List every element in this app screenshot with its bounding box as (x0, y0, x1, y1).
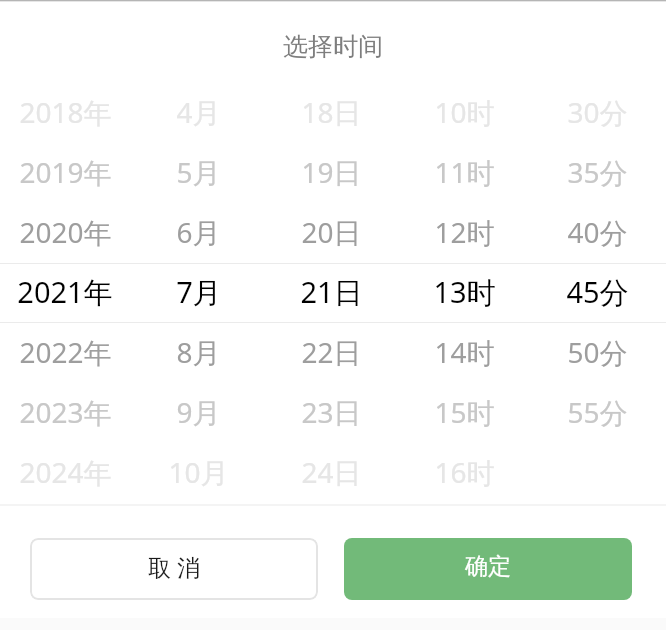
staticText: 55分 (567, 393, 628, 431)
staticText: 2019年 (19, 153, 112, 191)
button[interactable]: 4月 (132, 82, 265, 142)
button[interactable]: 11时 (398, 142, 531, 202)
staticText: 16时 (434, 453, 495, 491)
staticText: 2021年 (17, 272, 113, 312)
button[interactable]: 35分 (531, 142, 664, 202)
staticText: 35分 (567, 153, 628, 191)
staticText: 24日 (301, 453, 362, 491)
staticText: 2018年 (19, 93, 112, 131)
button[interactable]: 19日 (265, 142, 398, 202)
staticText: 取 消 (148, 551, 200, 582)
button[interactable]: 2018年 (0, 82, 132, 142)
button[interactable]: 16时 (398, 442, 531, 502)
staticText: 18日 (301, 93, 362, 131)
button[interactable]: 23日 (265, 382, 398, 442)
button[interactable]: 13时 (398, 262, 531, 322)
button[interactable]: 15时 (398, 382, 531, 442)
staticText: 20日 (301, 213, 362, 251)
staticText: 4月 (176, 93, 221, 131)
button[interactable]: 30分 (531, 82, 664, 142)
button[interactable]: 55分 (531, 382, 664, 442)
button[interactable]: 40分 (531, 202, 664, 262)
staticText: 23日 (301, 393, 362, 431)
staticText: 6月 (176, 213, 221, 251)
button[interactable]: 14时 (398, 322, 531, 382)
button[interactable]: 12时 (398, 202, 531, 262)
staticText: 2020年 (19, 213, 112, 251)
staticText: 8月 (176, 333, 221, 371)
staticText: 5月 (176, 153, 221, 191)
button[interactable]: 24日 (265, 442, 398, 502)
button[interactable]: 21日 (265, 262, 398, 322)
staticText: 10月 (168, 453, 229, 491)
button[interactable]: 22日 (265, 322, 398, 382)
button[interactable]: 5月 (132, 142, 265, 202)
staticText: 21日 (300, 272, 363, 312)
staticText: 15时 (434, 393, 495, 431)
staticText: 45分 (566, 272, 629, 312)
staticText: 30分 (567, 93, 628, 131)
staticText: 22日 (301, 333, 362, 371)
button[interactable]: 2021年 (0, 262, 132, 322)
staticText: 11时 (434, 153, 495, 191)
staticText: 12时 (434, 213, 495, 251)
staticText: 9月 (176, 393, 221, 431)
staticText: 13时 (433, 272, 496, 312)
button[interactable]: 8月 (132, 322, 265, 382)
staticText: 2024年 (19, 453, 112, 491)
button[interactable]: 确定 (344, 538, 632, 600)
staticText: 确定 (465, 552, 511, 581)
button[interactable]: 7月 (132, 262, 265, 322)
button[interactable]: 取 消 (30, 538, 318, 600)
button[interactable]: 2020年 (0, 202, 132, 262)
staticText: 2023年 (19, 393, 112, 431)
staticText: 10时 (434, 93, 495, 131)
button[interactable]: 10月 (132, 442, 265, 502)
button[interactable]: 2019年 (0, 142, 132, 202)
staticText: 选择时间 (283, 31, 383, 62)
staticText: 2022年 (19, 333, 112, 371)
button[interactable]: 2022年 (0, 322, 132, 382)
button[interactable]: 6月 (132, 202, 265, 262)
button[interactable]: 20日 (265, 202, 398, 262)
button[interactable]: 10时 (398, 82, 531, 142)
button[interactable]: 50分 (531, 322, 664, 382)
staticText: 14时 (434, 333, 495, 371)
button[interactable]: 45分 (531, 262, 664, 322)
button[interactable]: 9月 (132, 382, 265, 442)
staticText: 50分 (567, 333, 628, 371)
button[interactable]: 18日 (265, 82, 398, 142)
button[interactable]: 2023年 (0, 382, 132, 442)
button[interactable]: 2024年 (0, 442, 132, 502)
staticText: 7月 (176, 272, 222, 312)
staticText: 40分 (567, 213, 628, 251)
staticText: 19日 (301, 153, 362, 191)
